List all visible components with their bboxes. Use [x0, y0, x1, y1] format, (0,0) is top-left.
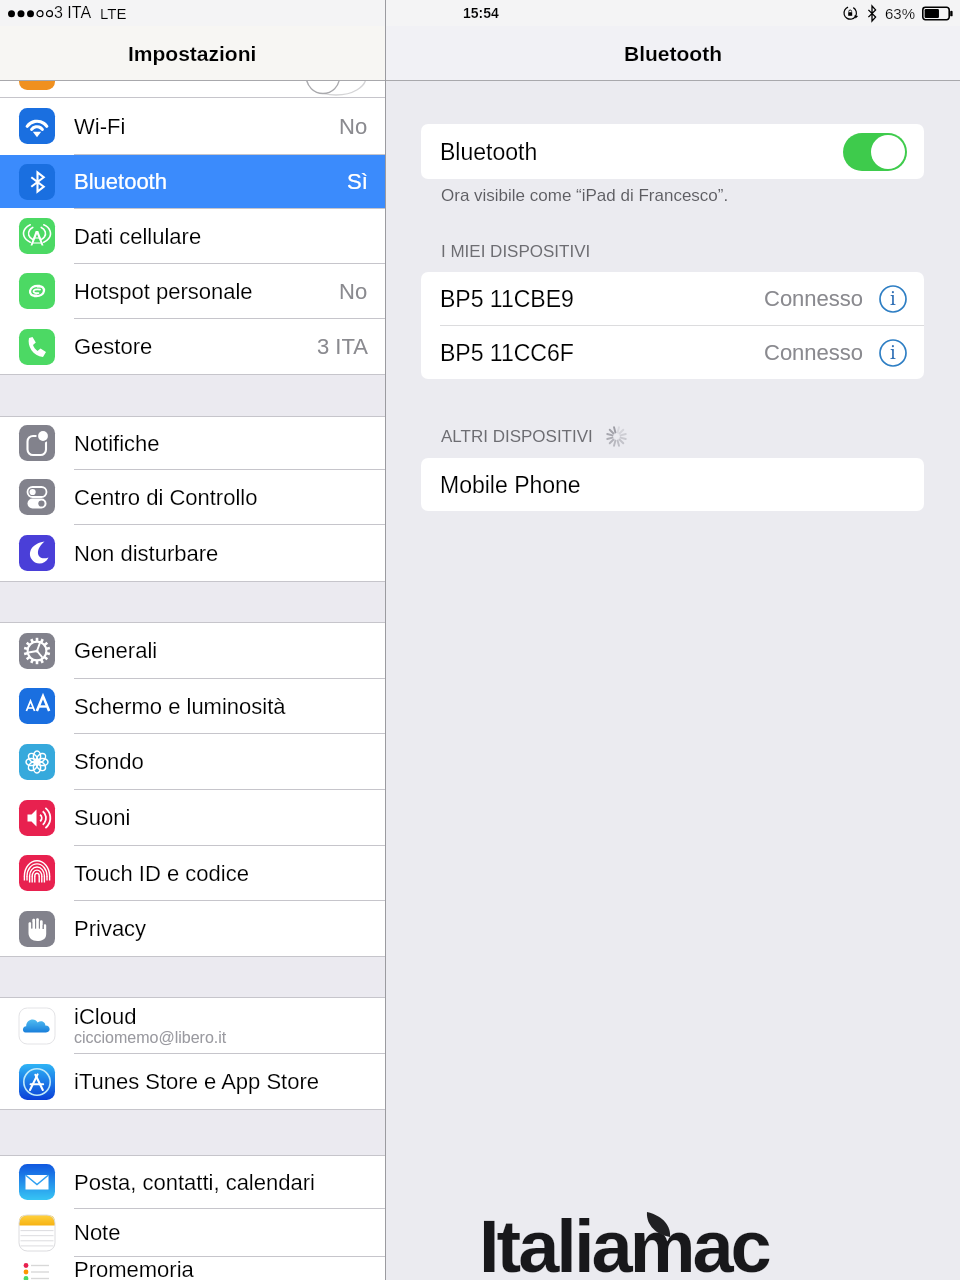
button[interactable]: Posta, contatti, calendari — [0, 1156, 385, 1208]
staticText: cicciomemo@libero.it — [74, 1029, 227, 1047]
staticText: Note — [74, 1220, 121, 1245]
button[interactable]: Schermo e luminosità — [0, 679, 385, 733]
button[interactable]: Touch ID e codice — [0, 846, 385, 900]
staticText: Bluetooth — [624, 42, 722, 65]
button[interactable]: Bluetooth — [421, 124, 924, 179]
button[interactable]: Suoni — [0, 790, 385, 845]
button[interactable]: Hotspot personale — [0, 264, 385, 318]
staticText: Connesso — [764, 286, 864, 311]
button[interactable]: Dati cellulare — [0, 209, 385, 263]
button[interactable]: Mobile Phone — [421, 458, 924, 511]
staticText: Generali — [74, 638, 158, 663]
staticText: Touch ID e codice — [74, 861, 249, 886]
button[interactable]: BP5 11CC6F — [421, 326, 924, 379]
button[interactable]: Promemoria — [0, 1257, 385, 1280]
staticText: i — [890, 286, 896, 311]
staticText: Impostazioni — [128, 42, 257, 65]
button[interactable]: Wi-Fi — [0, 98, 385, 154]
button[interactable]: Non disturbare — [0, 525, 385, 581]
staticText: No — [339, 114, 368, 139]
button[interactable]: Privacy — [0, 901, 385, 956]
button[interactable]: Info — [879, 339, 907, 367]
staticText: Privacy — [74, 916, 147, 941]
button[interactable]: iTunes Store e App Store — [0, 1054, 385, 1109]
staticText: Ora visibile come “iPad di Francesco”. — [441, 186, 729, 205]
staticText: iTunes Store e App Store — [74, 1069, 319, 1094]
button[interactable]: Sfondo — [0, 734, 385, 789]
staticText: Notifiche — [74, 431, 160, 456]
staticText: 3 ITA — [317, 334, 368, 359]
staticText: Bluetooth — [74, 169, 167, 194]
staticText: I MIEI DISPOSITIVI — [441, 242, 591, 261]
button[interactable]: Gestore — [0, 319, 385, 374]
staticText: Connesso — [764, 340, 864, 365]
button[interactable]: BP5 11CBE9 — [421, 272, 924, 325]
button[interactable]: Info — [879, 285, 907, 313]
staticText: 63% — [885, 5, 916, 22]
button[interactable]: Bluetooth on — [843, 133, 907, 171]
button[interactable]: Centro di Controllo — [0, 470, 385, 524]
staticText: No — [339, 279, 368, 304]
staticText: 3 ITA — [54, 4, 92, 22]
staticText: LTE — [100, 5, 127, 22]
staticText: Suoni — [74, 805, 131, 830]
staticText: Sfondo — [74, 749, 144, 774]
button[interactable]: Bluetooth — [0, 155, 385, 208]
staticText: BP5 11CBE9 — [440, 286, 574, 312]
staticText: Posta, contatti, calendari — [74, 1170, 315, 1195]
button[interactable]: iCloud — [0, 998, 385, 1053]
staticText: ALTRI DISPOSITIVI — [441, 427, 593, 446]
staticText: Gestore — [74, 334, 153, 359]
staticText: 15:54 — [463, 5, 499, 21]
staticText: Schermo e luminosità — [74, 694, 286, 719]
staticText: i — [890, 340, 896, 365]
staticText: Promemoria — [74, 1257, 194, 1280]
button[interactable]: Notifiche — [0, 417, 385, 469]
staticText: Wi-Fi — [74, 114, 126, 139]
staticText: Bluetooth — [440, 139, 538, 165]
staticText: Italiamac — [479, 1205, 769, 1280]
staticText: Dati cellulare — [74, 224, 202, 249]
staticText: Hotspot personale — [74, 279, 253, 304]
staticText: BP5 11CC6F — [440, 340, 574, 366]
button[interactable]: Note — [0, 1209, 385, 1256]
staticText: Centro di Controllo — [74, 485, 258, 510]
staticText: Mobile Phone — [440, 472, 581, 498]
button[interactable]: Generali — [0, 623, 385, 678]
staticText: Non disturbare — [74, 541, 219, 566]
staticText: Sì — [347, 169, 368, 194]
staticText: iCloud — [74, 1004, 137, 1029]
